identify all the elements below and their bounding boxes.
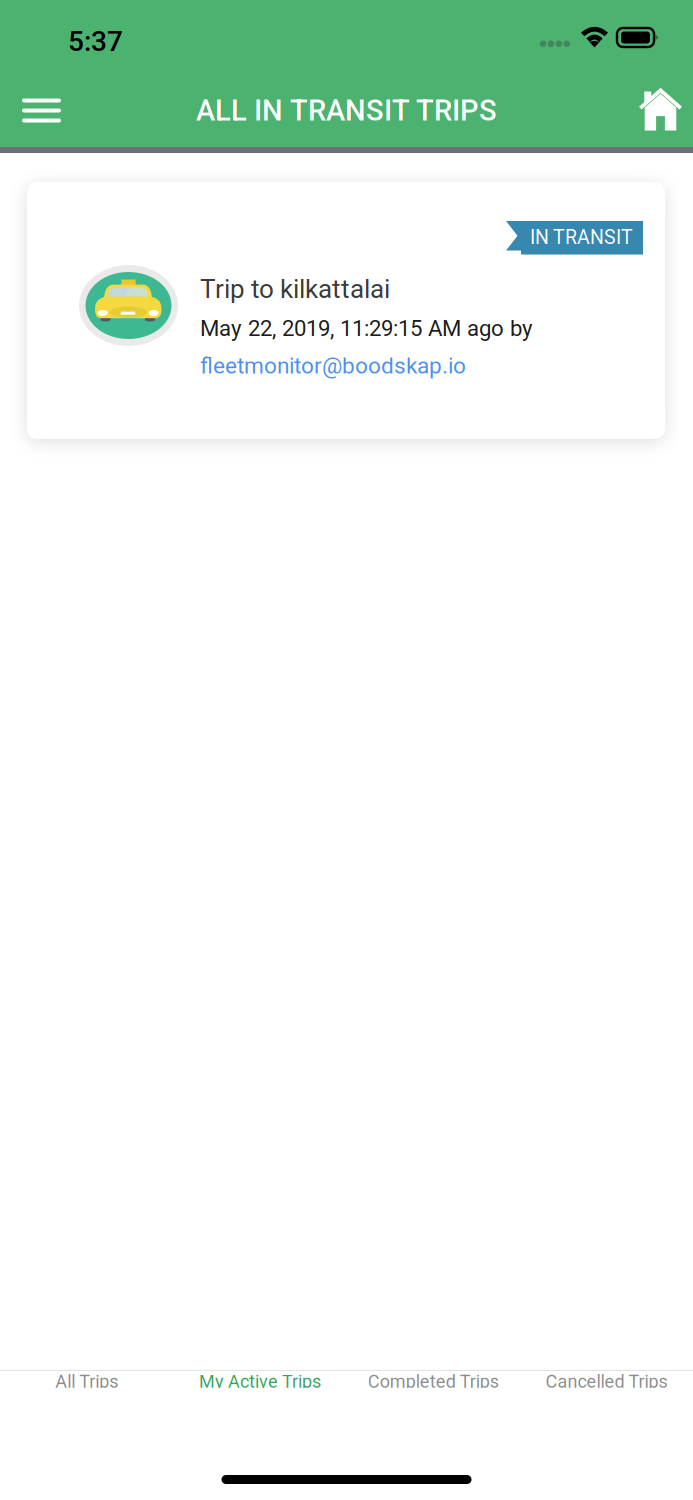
button[interactable]: Menu (5, 74, 78, 146)
button[interactable]: My Active Trips (173, 1371, 346, 1388)
staticText: 5:37 (68, 25, 123, 58)
staticText: Completed Trips (368, 1371, 499, 1392)
button[interactable]: Cancelled Trips (520, 1371, 693, 1388)
staticText: My Active Trips (199, 1371, 321, 1392)
staticText: ALL IN TRANSIT TRIPS (196, 93, 497, 127)
staticText: Cancelled Trips (545, 1371, 667, 1392)
staticText: May 22, 2019, 11:29:15 AM ago by (200, 315, 533, 341)
staticText: Trip to kilkattalai (200, 274, 390, 304)
button[interactable]: Completed Trips (346, 1371, 520, 1388)
button[interactable]: Home (631, 74, 691, 146)
staticText: fleetmonitor@boodskap.io (200, 352, 466, 379)
staticText: IN TRANSIT (530, 226, 633, 249)
staticText: All Trips (55, 1371, 118, 1392)
button[interactable]: All Trips (0, 1371, 173, 1388)
